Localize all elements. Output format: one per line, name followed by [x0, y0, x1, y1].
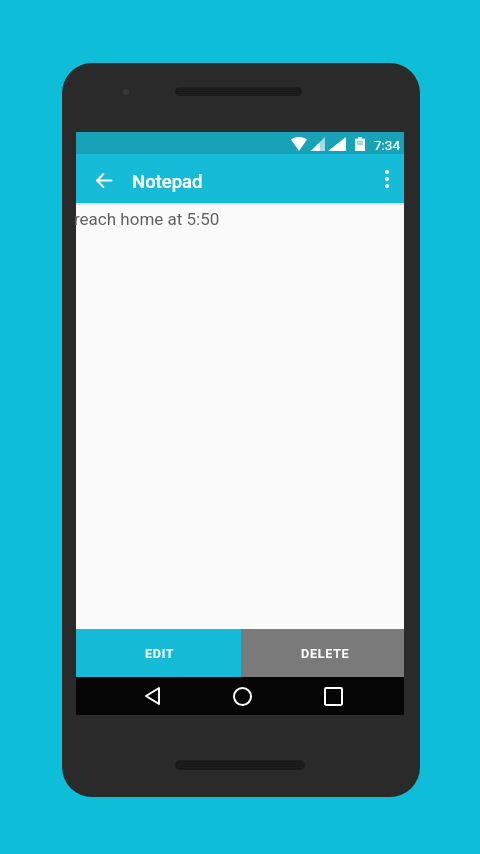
button[interactable]: More options	[369, 155, 405, 203]
button[interactable]: Home	[222, 677, 262, 715]
button[interactable]: EDIT	[76, 629, 241, 677]
staticText: reach home at 5:50	[74, 209, 220, 229]
button[interactable]: DELETE	[241, 629, 404, 677]
staticText: 7:34	[374, 137, 401, 153]
button[interactable]: Navigate up	[84, 160, 124, 200]
staticText: EDIT	[145, 646, 175, 661]
staticText: Notepad	[132, 171, 203, 193]
button[interactable]: Back	[132, 677, 172, 715]
staticText: DELETE	[301, 646, 350, 661]
button[interactable]: Recent apps	[313, 677, 353, 715]
